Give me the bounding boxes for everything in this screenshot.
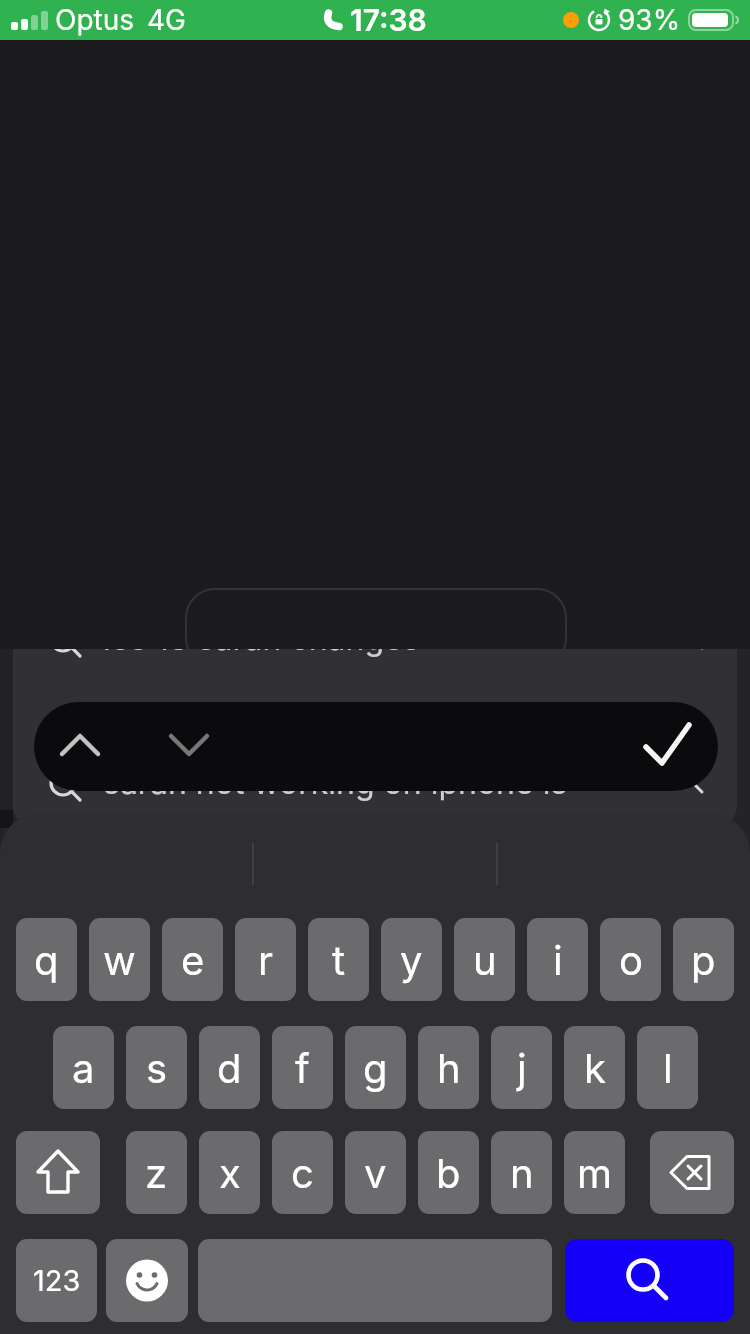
- button[interactable]: l: [637, 1026, 698, 1109]
- button[interactable]: c: [272, 1131, 333, 1214]
- staticText: 123: [33, 1263, 81, 1298]
- staticText: l: [663, 1044, 673, 1092]
- button[interactable]: q: [16, 918, 77, 1001]
- staticText: w: [103, 936, 136, 984]
- button[interactable]: i: [527, 918, 588, 1001]
- staticText: k: [584, 1044, 606, 1092]
- button[interactable]: t: [308, 918, 369, 1001]
- staticText: ios 13 sarah changes: [103, 619, 420, 658]
- staticText: i: [553, 936, 563, 984]
- button[interactable]: [676, 766, 710, 800]
- button[interactable]: [106, 1239, 188, 1322]
- staticText: v: [364, 1149, 387, 1197]
- staticText: j: [517, 1044, 527, 1092]
- staticText: t: [332, 936, 346, 984]
- button[interactable]: f: [272, 1026, 333, 1109]
- staticText: 93%: [618, 3, 681, 37]
- button[interactable]: b: [418, 1131, 479, 1214]
- button[interactable]: x: [199, 1131, 260, 1214]
- button[interactable]: j: [491, 1026, 552, 1109]
- button[interactable]: [650, 1131, 734, 1214]
- button[interactable]: [565, 1239, 734, 1322]
- staticText: x: [219, 1149, 241, 1197]
- staticText: y: [400, 936, 423, 984]
- staticText: b: [436, 1149, 461, 1197]
- staticText: m: [577, 1149, 613, 1197]
- staticText: n: [510, 1149, 534, 1197]
- button[interactable]: [16, 1131, 100, 1214]
- button[interactable]: o: [600, 918, 661, 1001]
- staticText: p: [691, 936, 716, 984]
- button[interactable]: d: [199, 1026, 260, 1109]
- staticText: o: [619, 936, 643, 984]
- staticText: sarah not working on iphone is: [103, 763, 568, 802]
- button[interactable]: v: [345, 1131, 406, 1214]
- button[interactable]: n: [491, 1131, 552, 1214]
- staticText: c: [291, 1149, 314, 1197]
- button[interactable]: [48, 770, 88, 810]
- button[interactable]: s: [126, 1026, 187, 1109]
- staticText: z: [145, 1149, 168, 1197]
- button[interactable]: m: [564, 1131, 625, 1214]
- staticText: g: [363, 1044, 388, 1092]
- staticText: f: [295, 1044, 310, 1092]
- staticText: 4G: [147, 3, 186, 37]
- staticText: s: [146, 1044, 168, 1092]
- button[interactable]: k: [564, 1026, 625, 1109]
- button[interactable]: z: [126, 1131, 187, 1214]
- button[interactable]: h: [418, 1026, 479, 1109]
- button[interactable]: 123: [16, 1239, 97, 1322]
- button[interactable]: w: [89, 918, 150, 1001]
- staticText: d: [217, 1044, 242, 1092]
- button[interactable]: [13, 601, 737, 675]
- button[interactable]: a: [53, 1026, 114, 1109]
- button[interactable]: u: [454, 918, 515, 1001]
- staticText: h: [437, 1044, 461, 1092]
- button[interactable]: [676, 622, 710, 656]
- staticText: q: [34, 936, 59, 984]
- staticText: r: [258, 936, 274, 984]
- button[interactable]: [13, 745, 737, 819]
- button[interactable]: y: [381, 918, 442, 1001]
- button[interactable]: [198, 1239, 552, 1322]
- button[interactable]: Optus: [0, 0, 750, 40]
- staticText: 17:38: [350, 2, 427, 38]
- button[interactable]: r: [235, 918, 296, 1001]
- button[interactable]: g: [345, 1026, 406, 1109]
- staticText: u: [473, 936, 497, 984]
- staticText: a: [72, 1044, 95, 1092]
- staticText: Optus: [55, 3, 135, 37]
- button[interactable]: [34, 702, 718, 791]
- button[interactable]: p: [673, 918, 734, 1001]
- button[interactable]: [48, 626, 88, 666]
- button[interactable]: e: [162, 918, 223, 1001]
- staticText: e: [181, 936, 205, 984]
